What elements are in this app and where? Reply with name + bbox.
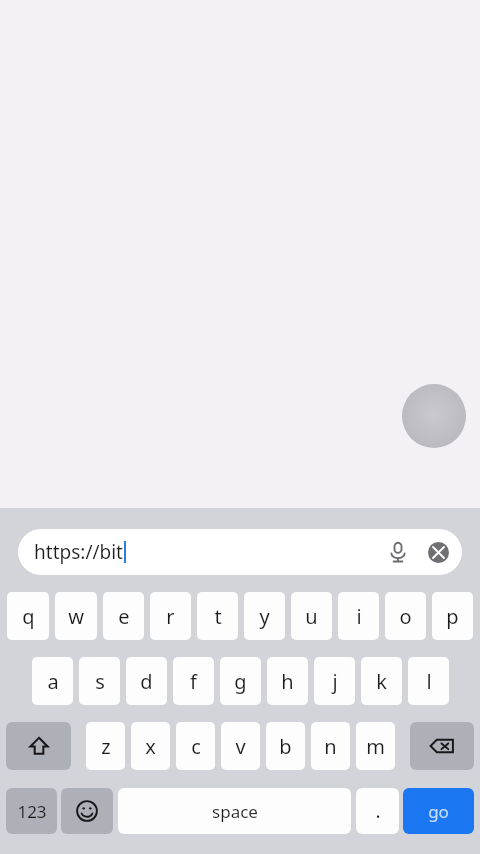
staticText: w — [68, 603, 84, 630]
button[interactable]: r — [150, 592, 191, 640]
button[interactable]: i — [338, 592, 379, 640]
button[interactable]: 123 — [6, 788, 57, 834]
button[interactable]: p — [432, 592, 473, 640]
staticText: j — [332, 668, 338, 695]
button[interactable]: Shift — [6, 722, 71, 770]
button[interactable]: n — [311, 722, 350, 770]
button[interactable]: b — [266, 722, 305, 770]
staticText: d — [140, 668, 153, 695]
staticText: y — [259, 603, 270, 630]
button[interactable]: e — [103, 592, 144, 640]
button[interactable]: k — [361, 657, 402, 705]
button[interactable]: u — [291, 592, 332, 640]
staticText: k — [376, 668, 387, 695]
staticText: v — [235, 733, 246, 760]
button[interactable]: g — [220, 657, 261, 705]
button[interactable]: j — [314, 657, 355, 705]
staticText: i — [356, 603, 362, 630]
button[interactable]: go — [403, 788, 474, 834]
button[interactable]: w — [55, 592, 97, 640]
staticText: f — [190, 668, 197, 695]
staticText: e — [118, 603, 130, 630]
staticText: m — [366, 733, 385, 760]
button[interactable]: Clear text — [418, 532, 458, 572]
staticText: o — [399, 603, 412, 630]
staticText: r — [166, 603, 175, 630]
button[interactable]: h — [267, 657, 308, 705]
button[interactable]: y — [244, 592, 285, 640]
staticText: g — [234, 668, 247, 695]
staticText: p — [446, 603, 459, 630]
button[interactable]: Backspace — [410, 722, 474, 770]
staticText: a — [47, 668, 59, 695]
staticText: go — [428, 800, 449, 823]
button[interactable]: d — [126, 657, 167, 705]
button[interactable]: q — [7, 592, 49, 640]
button[interactable]: s — [79, 657, 120, 705]
button[interactable]: space — [118, 788, 351, 834]
button[interactable]: Emoji — [61, 788, 113, 834]
button[interactable]: a — [32, 657, 73, 705]
staticText: h — [281, 668, 294, 695]
button[interactable]: https://bit — [18, 529, 462, 575]
button[interactable]: . — [356, 788, 399, 834]
button[interactable]: Action — [402, 384, 466, 448]
staticText: z — [101, 733, 111, 760]
staticText: u — [305, 603, 318, 630]
staticText: l — [426, 668, 432, 695]
button[interactable]: t — [197, 592, 238, 640]
staticText: q — [22, 603, 35, 630]
staticText: b — [279, 733, 292, 760]
button[interactable]: f — [173, 657, 214, 705]
staticText: s — [95, 668, 105, 695]
staticText: space — [212, 800, 258, 823]
button[interactable]: m — [356, 722, 395, 770]
button[interactable]: l — [408, 657, 449, 705]
staticText: x — [145, 733, 156, 760]
staticText: n — [324, 733, 337, 760]
staticText: . — [375, 798, 381, 824]
staticText: c — [191, 733, 201, 760]
button[interactable]: Voice search — [378, 532, 418, 572]
button[interactable]: z — [86, 722, 125, 770]
staticText: t — [214, 603, 222, 630]
staticText: 123 — [17, 800, 47, 823]
button[interactable]: v — [221, 722, 260, 770]
staticText: https://bit — [34, 539, 123, 565]
button[interactable]: x — [131, 722, 170, 770]
button[interactable]: o — [385, 592, 426, 640]
button[interactable]: c — [176, 722, 215, 770]
